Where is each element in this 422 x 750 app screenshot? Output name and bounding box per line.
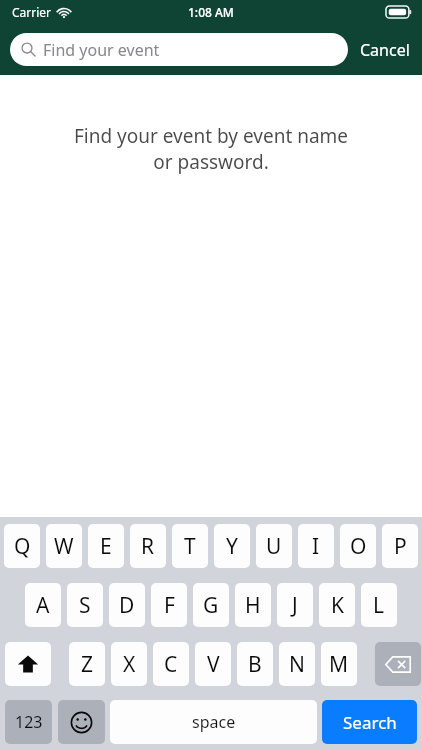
button[interactable]: F bbox=[151, 583, 187, 627]
staticText: 1:08 AM bbox=[188, 4, 234, 20]
button[interactable]: W bbox=[46, 524, 82, 568]
button[interactable]: I bbox=[298, 524, 334, 568]
button[interactable]: S bbox=[67, 583, 103, 627]
button[interactable]: J bbox=[277, 583, 313, 627]
button[interactable]: 123 bbox=[5, 700, 52, 744]
staticText: L bbox=[373, 591, 385, 620]
button[interactable]: U bbox=[256, 524, 292, 568]
button[interactable]: T bbox=[172, 524, 208, 568]
staticText: 123 bbox=[15, 711, 43, 733]
staticText: S bbox=[79, 591, 91, 620]
staticText: Find your event by event name or passwor… bbox=[0, 123, 422, 175]
staticText: H bbox=[245, 591, 261, 620]
staticText: Carrier bbox=[12, 4, 52, 20]
button[interactable]: D bbox=[109, 583, 145, 627]
button[interactable]: A bbox=[25, 583, 61, 627]
staticText: V bbox=[207, 650, 220, 679]
button[interactable]: C bbox=[153, 642, 189, 686]
button[interactable]: G bbox=[193, 583, 229, 627]
button[interactable]: Emoji bbox=[58, 700, 105, 744]
button[interactable]: Shift bbox=[5, 642, 51, 686]
staticText: N bbox=[289, 650, 305, 679]
button[interactable]: Search bbox=[322, 700, 417, 744]
staticText: P bbox=[394, 532, 407, 561]
button[interactable]: V bbox=[195, 642, 231, 686]
button[interactable]: Z bbox=[69, 642, 105, 686]
button[interactable]: R bbox=[130, 524, 166, 568]
button[interactable]: N bbox=[279, 642, 315, 686]
staticText: O bbox=[350, 532, 367, 561]
staticText: Y bbox=[226, 532, 238, 561]
button[interactable]: X bbox=[111, 642, 147, 686]
staticText: J bbox=[292, 591, 298, 620]
staticText: T bbox=[184, 532, 196, 561]
button[interactable]: P bbox=[382, 524, 418, 568]
staticText: K bbox=[331, 591, 344, 620]
staticText: Q bbox=[14, 532, 31, 561]
button[interactable]: Y bbox=[214, 524, 250, 568]
staticText: Find your event bbox=[43, 39, 160, 61]
staticText: Search bbox=[343, 711, 397, 734]
button[interactable]: M bbox=[321, 642, 357, 686]
staticText: I bbox=[312, 532, 320, 561]
staticText: B bbox=[248, 650, 262, 679]
staticText: C bbox=[164, 650, 178, 679]
staticText: Z bbox=[81, 650, 94, 679]
staticText: R bbox=[141, 532, 155, 561]
button[interactable]: E bbox=[88, 524, 124, 568]
button[interactable]: space bbox=[110, 700, 317, 744]
button[interactable]: Find your event bbox=[10, 33, 348, 66]
staticText: U bbox=[266, 532, 282, 561]
button[interactable]: H bbox=[235, 583, 271, 627]
button[interactable]: B bbox=[237, 642, 273, 686]
staticText: A bbox=[36, 591, 50, 620]
staticText: E bbox=[100, 532, 112, 561]
staticText: space bbox=[192, 711, 236, 733]
staticText: F bbox=[164, 591, 175, 620]
button[interactable]: L bbox=[361, 583, 397, 627]
staticText: X bbox=[123, 650, 136, 679]
staticText: D bbox=[119, 591, 135, 620]
button[interactable]: O bbox=[340, 524, 376, 568]
staticText: W bbox=[54, 532, 74, 561]
staticText: G bbox=[203, 591, 219, 620]
button[interactable]: Q bbox=[4, 524, 40, 568]
staticText: M bbox=[329, 650, 349, 679]
button[interactable]: Backspace bbox=[375, 642, 421, 686]
button[interactable]: Cancel bbox=[348, 39, 422, 61]
staticText: Cancel bbox=[360, 39, 410, 61]
button[interactable]: K bbox=[319, 583, 355, 627]
